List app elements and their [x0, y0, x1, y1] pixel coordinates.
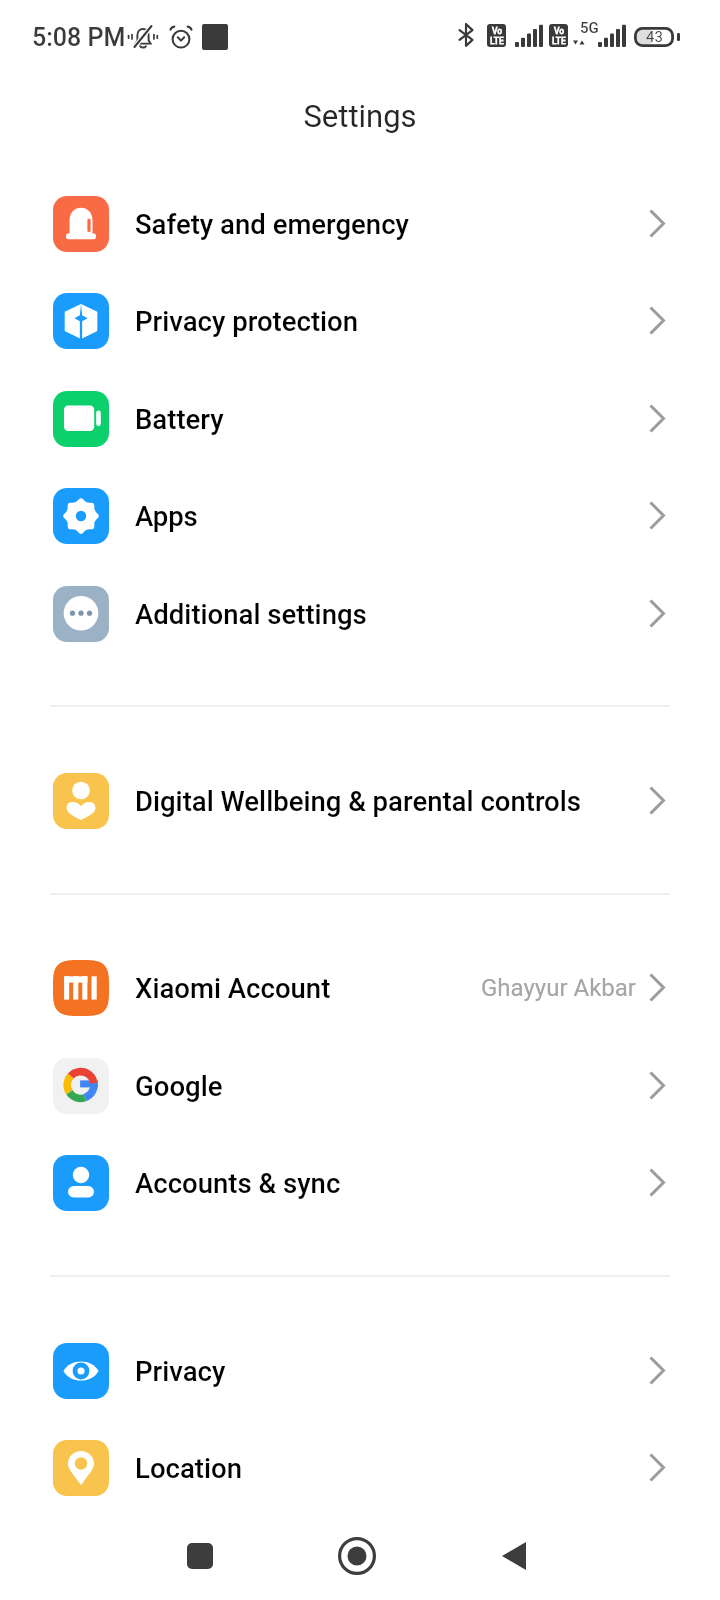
button[interactable]: Back: [474, 1516, 554, 1596]
button[interactable]: Home: [317, 1516, 397, 1596]
button[interactable]: Battery: [0, 371, 720, 467]
button[interactable]: Additional settings: [0, 566, 720, 662]
staticText: Privacy protection: [135, 305, 359, 337]
staticText: Ghayyur Akbar: [481, 974, 636, 1002]
staticText: 43: [646, 28, 663, 46]
staticText: Privacy: [135, 1355, 226, 1387]
staticText: 5G: [580, 19, 599, 37]
staticText: LTE: [552, 36, 566, 46]
staticText: 5:08 PM: [32, 23, 126, 52]
staticText: Google: [135, 1070, 223, 1102]
button[interactable]: Safety and emergency: [0, 176, 720, 272]
button[interactable]: Privacy protection: [0, 273, 720, 369]
button[interactable]: Accounts & sync: [0, 1135, 720, 1231]
staticText: Apps: [135, 500, 198, 532]
button[interactable]: Location: [0, 1420, 720, 1516]
button[interactable]: Xiaomi Account: [0, 940, 720, 1036]
button[interactable]: Digital Wellbeing & parental controls: [0, 753, 720, 849]
staticText: LTE: [490, 36, 504, 46]
staticText: Vo: [554, 26, 565, 36]
staticText: Additional settings: [135, 598, 367, 630]
staticText: Accounts & sync: [135, 1167, 341, 1199]
staticText: Vo: [492, 26, 503, 36]
staticText: Safety and emergency: [135, 208, 409, 240]
staticText: Xiaomi Account: [135, 972, 331, 1004]
staticText: Battery: [135, 403, 224, 435]
staticText: Location: [135, 1452, 242, 1484]
button[interactable]: Privacy: [0, 1323, 720, 1419]
staticText: Digital Wellbeing & parental controls: [135, 785, 581, 817]
button[interactable]: Google: [0, 1038, 720, 1134]
button[interactable]: Recents: [160, 1516, 240, 1596]
staticText: Settings: [303, 98, 417, 134]
button[interactable]: Apps: [0, 468, 720, 564]
